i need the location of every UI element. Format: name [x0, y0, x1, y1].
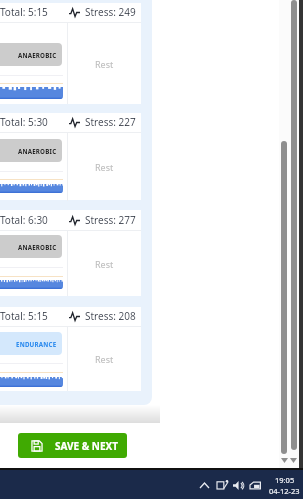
staticText: Total: 5:15 — [0, 309, 48, 323]
staticText: Rest — [95, 161, 114, 173]
button[interactable]: SAVE & NEXT — [18, 433, 127, 458]
staticText: ANAEROBIC — [18, 243, 57, 251]
other: Scroll window down — [290, 458, 297, 463]
staticText: Stress: 227 — [85, 115, 136, 129]
staticText: 19:05 — [275, 475, 295, 485]
button[interactable]: Volume — [230, 473, 247, 497]
button[interactable]: Total: 5:15 — [0, 307, 141, 391]
staticText: Rest — [95, 353, 114, 365]
other: Scroll down — [281, 458, 288, 463]
button[interactable]: Total: 5:30 — [0, 113, 141, 200]
staticText: ENDURANCE — [16, 340, 57, 348]
staticText: SAVE & NEXT — [55, 439, 119, 453]
staticText: ANAEROBIC — [18, 147, 57, 155]
button[interactable]: Network — [213, 473, 231, 497]
staticText: Rest — [95, 58, 114, 70]
button[interactable]: Input method — [246, 473, 263, 497]
staticText: ANAEROBIC — [18, 51, 57, 59]
staticText: 04-12-23 — [269, 486, 300, 496]
staticText: Total: 5:30 — [0, 115, 48, 129]
button[interactable]: Scroll window — [291, 0, 297, 450]
button[interactable]: Total: 5:15 — [0, 3, 141, 104]
button[interactable]: Show hidden icons — [195, 473, 214, 497]
button[interactable]: Scroll — [281, 141, 287, 454]
staticText: Stress: 249 — [85, 5, 136, 19]
staticText: Rest — [95, 258, 114, 270]
staticText: Stress: 277 — [85, 213, 136, 227]
button[interactable]: 19:05 — [266, 472, 303, 499]
staticText: Stress: 208 — [85, 309, 136, 323]
button[interactable]: Total: 6:30 — [0, 210, 141, 296]
staticText: Total: 6:30 — [0, 213, 48, 227]
staticText: Total: 5:15 — [0, 5, 48, 19]
